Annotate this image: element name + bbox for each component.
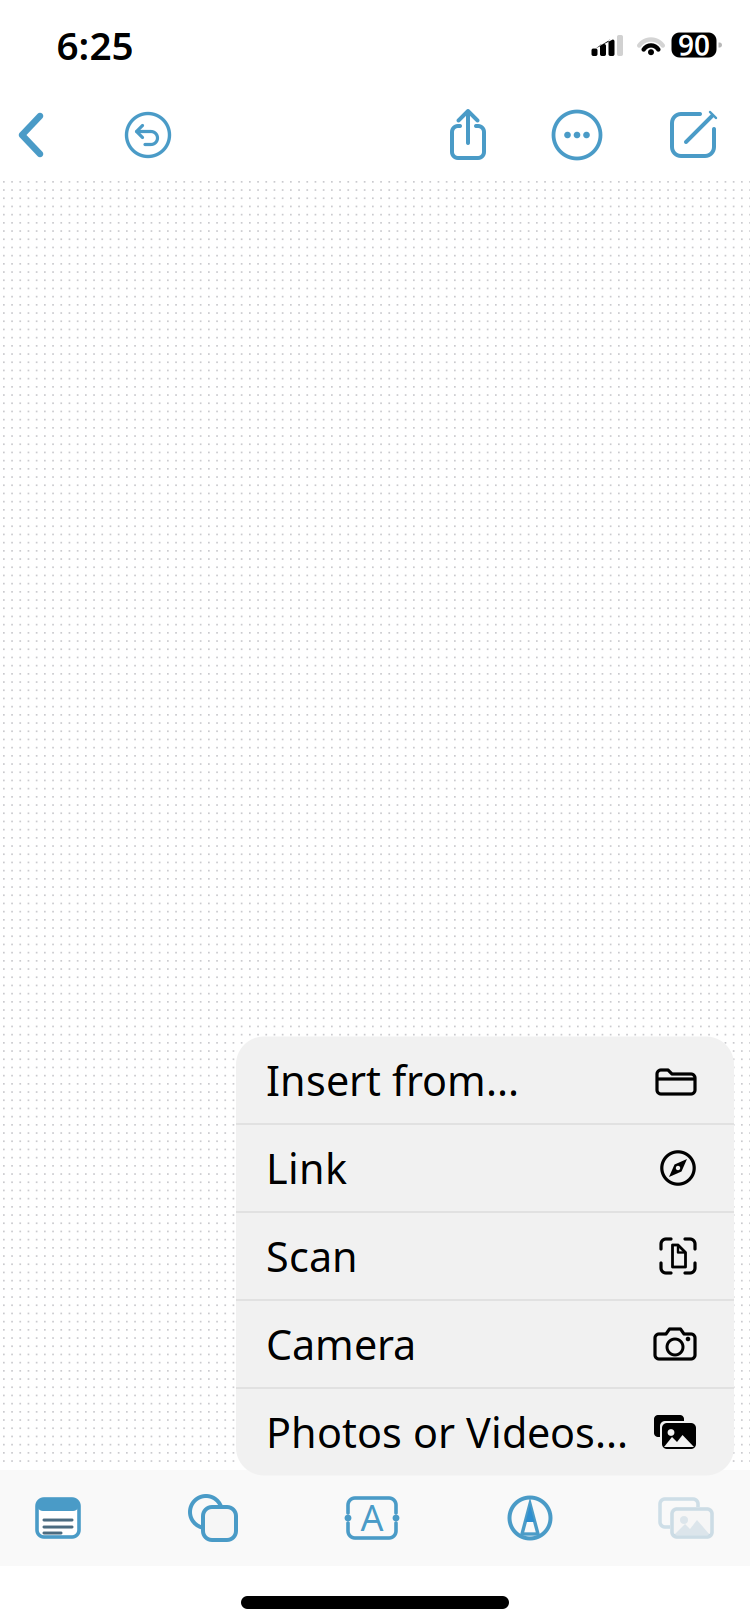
- button[interactable]: Compose: [649, 92, 737, 178]
- button[interactable]: Back: [0, 92, 75, 178]
- staticText: Photos or Videos...: [266, 1405, 628, 1459]
- staticText: A: [360, 1493, 383, 1541]
- button[interactable]: Table: [0, 1470, 128, 1566]
- button[interactable]: Share: [424, 92, 512, 178]
- button[interactable]: Insert from...: [236, 1036, 734, 1123]
- button[interactable]: More: [533, 92, 621, 178]
- staticText: Insert from...: [266, 1053, 519, 1107]
- button[interactable]: Text Box: [302, 1470, 442, 1566]
- button[interactable]: Insert Media: [616, 1470, 750, 1566]
- button[interactable]: Undo: [104, 92, 192, 178]
- staticText: 6:25: [56, 19, 133, 71]
- button[interactable]: Camera: [236, 1300, 734, 1387]
- button[interactable]: Photos or Videos...: [236, 1388, 734, 1475]
- button[interactable]: Markup: [460, 1470, 600, 1566]
- staticText: Camera: [266, 1317, 416, 1371]
- button[interactable]: Scan: [236, 1212, 734, 1299]
- staticText: 90: [678, 26, 710, 64]
- staticText: Scan: [266, 1229, 358, 1283]
- button[interactable]: Link: [236, 1124, 734, 1211]
- staticText: Link: [266, 1141, 347, 1195]
- button[interactable]: Shapes: [143, 1470, 283, 1566]
